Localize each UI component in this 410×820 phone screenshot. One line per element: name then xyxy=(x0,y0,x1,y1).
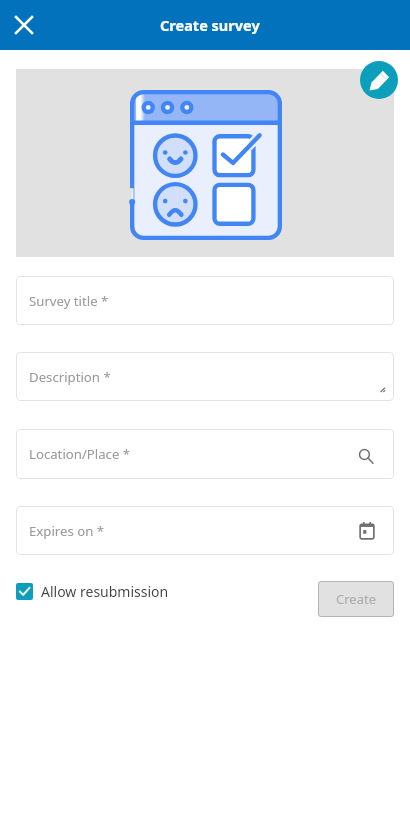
staticText: Create survey xyxy=(160,15,260,35)
staticText: Description * xyxy=(29,368,111,386)
button[interactable]: Location/Place * xyxy=(16,429,394,479)
button[interactable]: Allow resubmission xyxy=(16,574,169,608)
button[interactable]: Description * xyxy=(16,352,394,401)
button[interactable]: Survey title * xyxy=(16,276,394,325)
staticText: Allow resubmission xyxy=(41,582,169,601)
button[interactable]: Create xyxy=(318,581,394,617)
staticText: Survey title * xyxy=(29,292,109,310)
button[interactable]: Expires on * xyxy=(16,506,394,555)
staticText: Expires on * xyxy=(29,522,105,540)
button[interactable]: Close xyxy=(4,5,44,45)
staticText: Location/Place * xyxy=(29,445,131,463)
button[interactable]: Edit image xyxy=(360,61,398,99)
staticText: Create xyxy=(336,590,376,608)
